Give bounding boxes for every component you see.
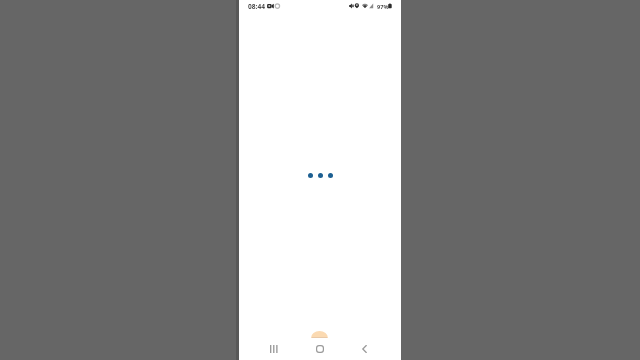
button[interactable]: Back: [355, 338, 377, 360]
staticText: 08:44: [248, 2, 265, 11]
button[interactable]: Home: [309, 338, 331, 360]
staticText: 97%: [377, 3, 389, 11]
button[interactable]: Recent apps: [263, 338, 285, 360]
